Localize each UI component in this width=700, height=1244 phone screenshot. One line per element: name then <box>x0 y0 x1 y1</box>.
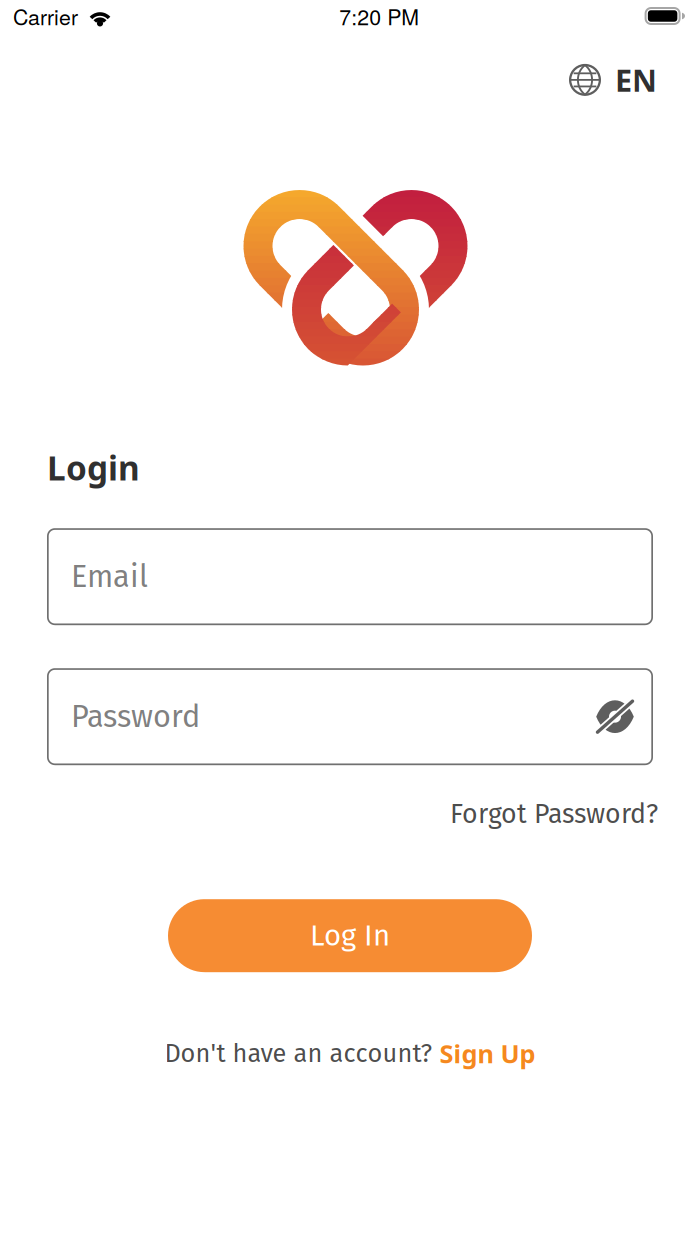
button[interactable]: Forgot Password? <box>450 798 658 830</box>
staticText: Sign Up <box>439 1036 535 1071</box>
staticText: Carrier <box>13 1 78 31</box>
staticText: Password <box>71 698 200 735</box>
staticText: Email <box>71 558 148 595</box>
staticText: EN <box>615 59 657 101</box>
staticText: Don't have an account? <box>164 1038 439 1069</box>
staticText: 7:20 PM <box>339 1 419 31</box>
button[interactable]: Show password <box>585 704 635 730</box>
staticText: Log In <box>310 918 390 953</box>
button[interactable]: Log In <box>168 899 532 972</box>
button[interactable]: Email <box>47 528 653 625</box>
button[interactable]: Don't have an account? <box>164 1036 535 1071</box>
staticText: Login <box>47 445 140 490</box>
staticText: Forgot Password? <box>450 798 658 830</box>
button[interactable]: EN <box>561 50 665 110</box>
